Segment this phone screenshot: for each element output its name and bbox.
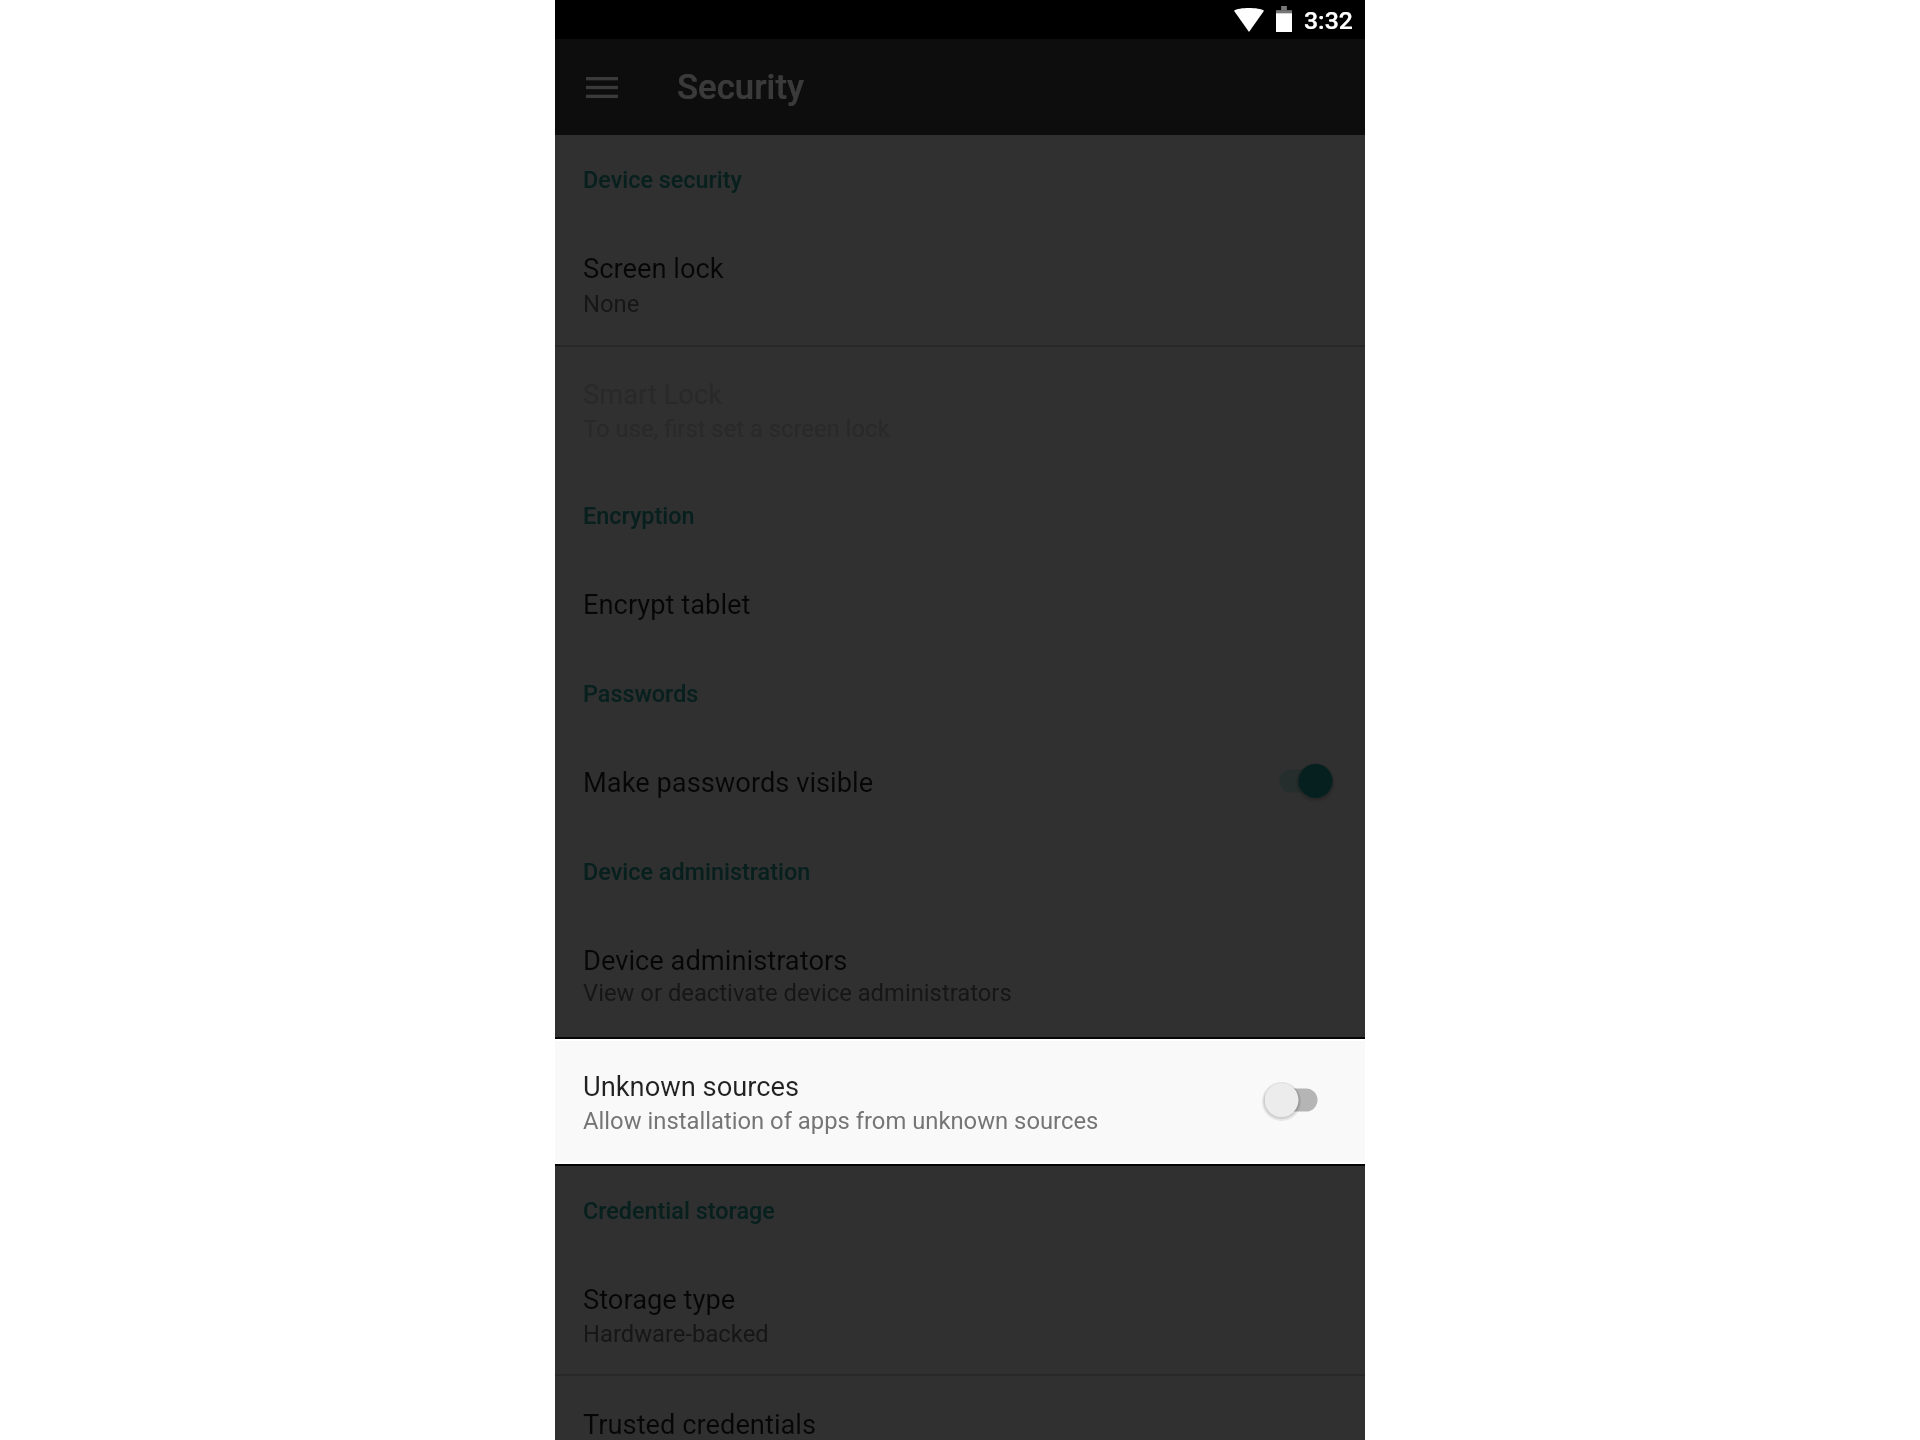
button[interactable] [555, 1041, 1365, 1162]
staticText: Device administrators [583, 945, 848, 977]
staticText: Storage type [583, 1284, 736, 1316]
button[interactable] [555, 925, 1365, 1036]
staticText: Hardware-backed [583, 1320, 769, 1348]
staticText: Credential storage [583, 1197, 775, 1224]
button[interactable]: Switch, on [1262, 757, 1350, 805]
staticText: Device security [583, 166, 743, 193]
staticText: Allow installation of apps from unknown … [583, 1107, 1099, 1135]
staticText: None [583, 290, 640, 318]
button[interactable]: Open navigation menu [570, 57, 630, 117]
staticText: 3:32 [1304, 6, 1353, 35]
button[interactable]: Switch, off [1247, 1076, 1335, 1124]
staticText: Make passwords visible [583, 767, 874, 799]
staticText: Encrypt tablet [583, 589, 751, 621]
staticText: Security [677, 67, 805, 108]
button[interactable] [555, 568, 1365, 660]
staticText: Passwords [583, 680, 699, 707]
staticText: Device administration [583, 858, 811, 885]
staticText: Encryption [583, 502, 695, 529]
staticText: Unknown sources [583, 1071, 800, 1103]
button[interactable] [555, 1265, 1365, 1374]
button[interactable] [555, 1374, 1365, 1440]
staticText: View or deactivate device administrators [583, 979, 1012, 1007]
staticText: Screen lock [583, 253, 724, 285]
staticText: Trusted credentials [583, 1409, 817, 1440]
button[interactable] [555, 232, 1365, 346]
button[interactable] [555, 745, 1365, 838]
